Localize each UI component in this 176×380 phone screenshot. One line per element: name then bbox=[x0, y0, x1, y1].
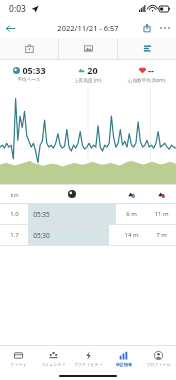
button[interactable]: Back bbox=[0, 18, 20, 38]
button[interactable]: アクティビティ bbox=[71, 346, 106, 371]
button[interactable]: 1.7 bbox=[0, 225, 176, 245]
button[interactable]: プロフィール bbox=[141, 346, 176, 371]
button[interactable]: More options bbox=[156, 19, 174, 37]
button[interactable]: 統計情報 bbox=[106, 346, 141, 371]
staticText: 14 m bbox=[124, 231, 139, 239]
staticText: 05:33 bbox=[22, 64, 46, 76]
staticText: 平均ペース bbox=[17, 77, 41, 83]
button[interactable]: Map bbox=[0, 38, 58, 59]
staticText: 統計情報 bbox=[116, 362, 132, 367]
staticText: 上昇高度 (m) bbox=[74, 77, 101, 83]
button[interactable]: Stats bbox=[118, 38, 176, 59]
staticText: 0:03 bbox=[9, 3, 26, 15]
staticText: -- bbox=[148, 64, 154, 76]
staticText: 6 m bbox=[126, 210, 137, 218]
staticText: フィード bbox=[10, 362, 27, 367]
staticText: 心拍数平均 (bpm) bbox=[128, 77, 165, 83]
staticText: 20 bbox=[87, 64, 98, 76]
staticText: 1.7 bbox=[10, 231, 19, 239]
staticText: 11 m bbox=[154, 210, 169, 218]
button[interactable]: 1.0 bbox=[0, 204, 176, 224]
staticText: コミュニティ bbox=[41, 362, 66, 367]
staticText: 05:35 bbox=[33, 210, 50, 219]
staticText: 7 m bbox=[156, 231, 167, 239]
button[interactable]: Share bbox=[138, 19, 156, 37]
button[interactable]: フィード bbox=[0, 346, 36, 371]
button[interactable]: コミュニティ bbox=[36, 346, 71, 371]
staticText: km bbox=[10, 191, 19, 198]
staticText: プロフィール bbox=[146, 362, 171, 367]
staticText: 05:30 bbox=[33, 231, 50, 240]
staticText: 1.0 bbox=[10, 210, 19, 218]
staticText: 2022/11/21 - 6:57 bbox=[57, 23, 119, 33]
button[interactable]: Photos bbox=[59, 38, 117, 59]
staticText: アクティビティ bbox=[74, 362, 103, 367]
